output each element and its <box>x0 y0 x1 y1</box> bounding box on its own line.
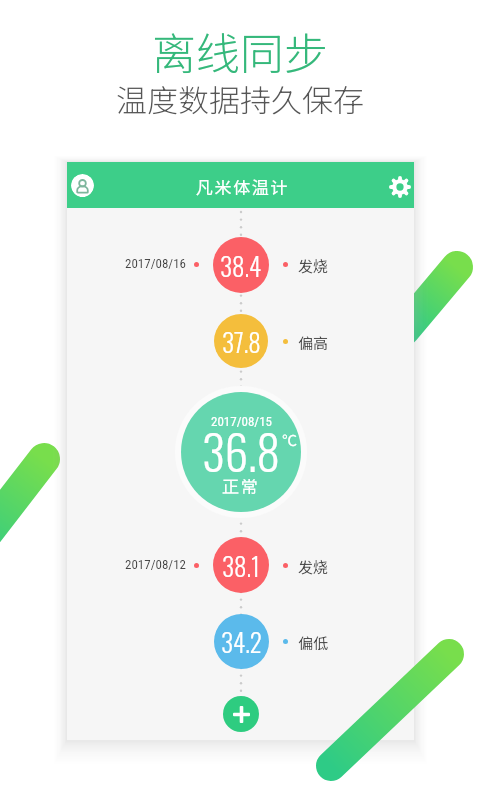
button[interactable]: Latest temperature 36.8 <box>175 386 307 518</box>
staticText: 凡米体温计 <box>196 174 289 199</box>
button[interactable]: Add record <box>223 696 259 732</box>
staticText: 正常 <box>222 473 260 498</box>
staticText: 离线同步 <box>0 19 480 83</box>
button[interactable]: Profile <box>71 174 94 197</box>
button[interactable]: 38.4 <box>213 237 269 293</box>
button[interactable]: 38.1 <box>213 537 269 593</box>
staticText: 2017/08/12 <box>125 557 186 572</box>
staticText: 2017/08/16 <box>125 256 186 271</box>
staticText: 37.8 <box>222 323 261 360</box>
staticText: 36.8 <box>202 416 281 486</box>
button[interactable]: 34.2 <box>214 614 269 669</box>
staticText: 38.1 <box>222 547 260 584</box>
staticText: 38.4 <box>220 247 262 284</box>
staticText: 发烧 <box>298 255 329 277</box>
staticText: 偏低 <box>298 632 329 654</box>
button[interactable]: 37.8 <box>214 314 268 368</box>
staticText: 2017/08/15 <box>211 414 272 429</box>
staticText: 发烧 <box>298 556 329 578</box>
staticText: 温度数据持久保存 <box>0 76 480 121</box>
staticText: ℃ <box>282 429 298 451</box>
staticText: 34.2 <box>221 623 262 660</box>
button[interactable]: Settings <box>389 176 411 198</box>
staticText: 偏高 <box>298 332 329 354</box>
